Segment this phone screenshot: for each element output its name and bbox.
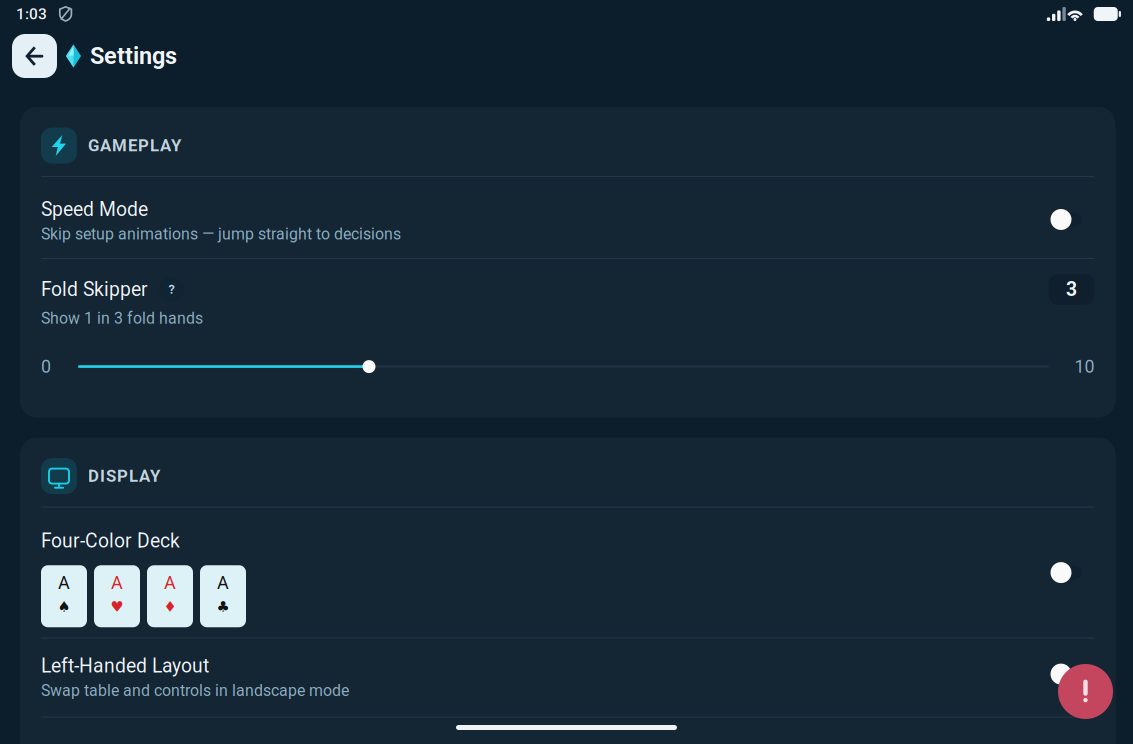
staticText: Left-Handed Layout bbox=[41, 655, 209, 677]
staticText: Skip setup animations — jump straight to… bbox=[41, 225, 401, 243]
staticText: ? bbox=[168, 282, 174, 297]
staticText: 0 bbox=[41, 356, 51, 377]
staticText: Speed Mode bbox=[41, 198, 148, 221]
staticText: A bbox=[58, 572, 70, 593]
staticText: Fold Skipper bbox=[41, 278, 148, 301]
staticText: Swap table and controls in landscape mod… bbox=[41, 681, 349, 700]
staticText: ♣ bbox=[216, 598, 229, 615]
staticText: Settings bbox=[90, 42, 177, 70]
button[interactable]: Help about Fold Skipper bbox=[159, 277, 184, 302]
staticText: Four-Color Deck bbox=[41, 530, 180, 552]
staticText: GAMEPLAY bbox=[88, 136, 181, 155]
button[interactable]: Four-Color Deck bbox=[20, 508, 1115, 638]
button[interactable]: Left-Handed Layout bbox=[20, 639, 1115, 717]
staticText: ♠ bbox=[57, 598, 70, 615]
staticText: 1:03 bbox=[16, 5, 47, 23]
staticText: Show 1 in 3 fold hands bbox=[41, 309, 203, 328]
button[interactable]: Speed Mode bbox=[20, 177, 1115, 258]
staticText: A bbox=[217, 572, 229, 593]
button[interactable]: Back bbox=[12, 34, 57, 78]
button[interactable]: Report an issue bbox=[1058, 664, 1113, 719]
staticText: A bbox=[111, 572, 123, 593]
staticText: ♥ bbox=[110, 598, 123, 615]
staticText: 10 bbox=[1074, 356, 1094, 377]
staticText: DISPLAY bbox=[88, 466, 160, 486]
staticText: ♦ bbox=[163, 598, 176, 615]
staticText: 3 bbox=[1066, 278, 1077, 301]
staticText: A bbox=[164, 572, 176, 593]
